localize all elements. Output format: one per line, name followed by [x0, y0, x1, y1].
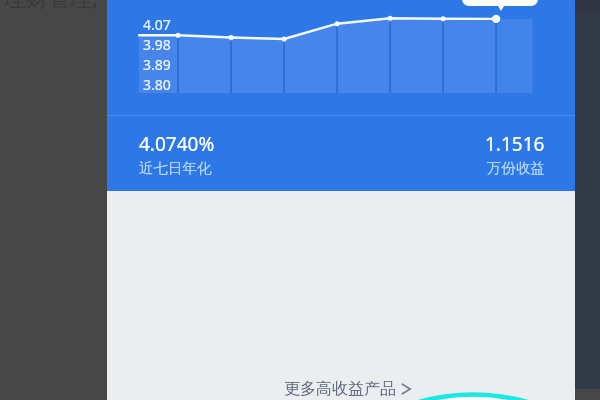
staticText: 近七日年化: [139, 159, 212, 177]
button[interactable]: 1.1516: [485, 131, 545, 177]
button[interactable]: 更多高收益产品: [284, 379, 413, 399]
staticText: 万份收益: [487, 159, 545, 177]
staticText: 3.89: [143, 55, 171, 74]
staticText: 3.98: [143, 35, 171, 54]
staticText: 1.1516: [485, 131, 545, 157]
staticText: 4.07: [143, 15, 171, 34]
staticText: 4.0740%: [139, 131, 215, 157]
staticText: 3.80: [143, 75, 171, 94]
button[interactable]: 七日年化收益率走势图: [107, 0, 575, 110]
staticText: 理财管理,: [4, 0, 98, 12]
button[interactable]: 4.0740%: [139, 131, 215, 177]
staticText: 更多高收益产品: [284, 379, 396, 399]
